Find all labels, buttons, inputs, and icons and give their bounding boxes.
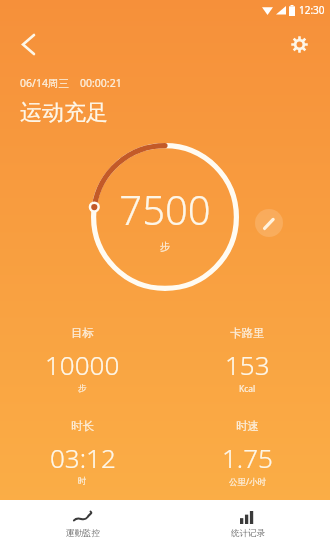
button[interactable]: 運動監控 (0, 500, 165, 550)
staticText: Kcal (239, 383, 256, 395)
staticText: 统计记录 (231, 528, 265, 539)
staticText: 153 (225, 347, 270, 382)
staticText: 时 (78, 476, 87, 487)
staticText: 06/14周三 (20, 76, 69, 90)
button[interactable]: 统计记录 (165, 500, 330, 550)
staticText: 时长 (71, 419, 94, 433)
staticText: 03:12 (50, 440, 116, 475)
staticText: 00:00:21 (80, 76, 122, 90)
staticText: 卡路里 (230, 326, 265, 340)
button[interactable]: Back (8, 24, 48, 64)
staticText: 目标 (71, 326, 94, 340)
staticText: 10000 (45, 347, 120, 382)
staticText: 步 (160, 240, 170, 253)
button[interactable]: Edit (255, 209, 283, 237)
staticText: 運動監控 (66, 528, 100, 539)
staticText: 运动充足 (20, 99, 108, 127)
staticText: 公里/小时 (229, 476, 267, 488)
staticText: 7500 (119, 182, 211, 236)
staticText: 12:30 (299, 3, 325, 17)
staticText: 时速 (236, 419, 259, 433)
staticText: 步 (78, 383, 87, 394)
staticText: 1.75 (222, 440, 273, 475)
button[interactable]: Settings (281, 26, 317, 62)
